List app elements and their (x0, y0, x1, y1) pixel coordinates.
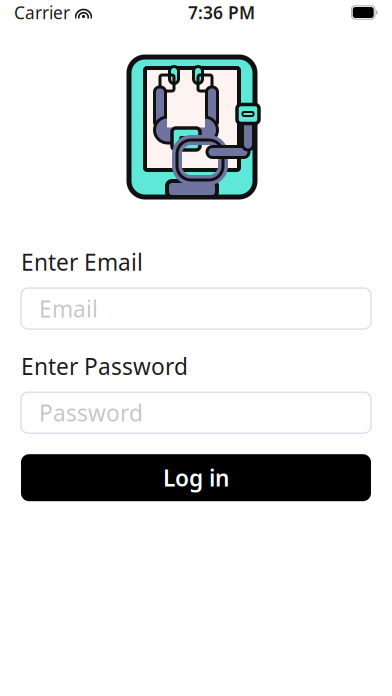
staticText: Email (39, 294, 98, 324)
button[interactable]: Log in (21, 454, 371, 501)
staticText: Enter Password (21, 351, 188, 381)
staticText: Carrier (14, 1, 70, 24)
staticText: 7:36 PM (188, 1, 255, 24)
button[interactable]: Password (21, 392, 371, 433)
staticText: Enter Email (21, 247, 143, 277)
button[interactable]: Email (21, 288, 371, 329)
staticText: Log in (163, 463, 229, 493)
staticText: Password (39, 398, 143, 428)
